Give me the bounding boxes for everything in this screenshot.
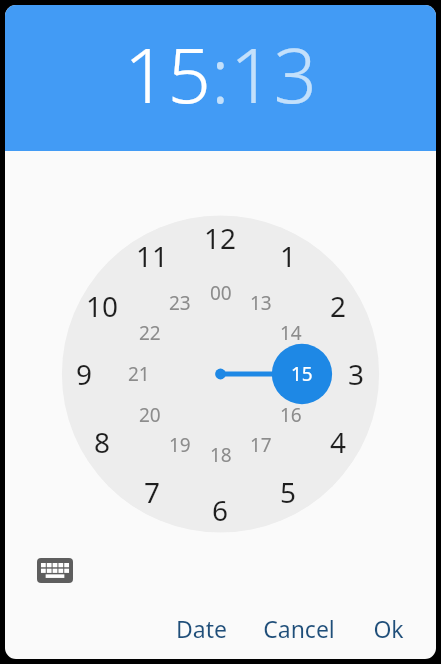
button[interactable]: Switch to keyboard input: [32, 553, 78, 587]
staticText: 14: [280, 320, 302, 346]
button[interactable]: Cancel: [253, 607, 345, 650]
button[interactable]: Ok: [363, 607, 414, 650]
staticText: 4: [330, 423, 347, 461]
staticText: 22: [139, 320, 161, 346]
staticText: 3: [348, 355, 365, 393]
staticText: 00: [210, 280, 232, 306]
staticText: :: [211, 22, 230, 126]
staticText: Ok: [373, 613, 404, 644]
staticText: 20: [139, 402, 161, 428]
staticText: 7: [144, 473, 161, 511]
staticText: Cancel: [263, 613, 335, 644]
staticText: 13: [230, 22, 317, 126]
staticText: 2: [330, 287, 347, 325]
staticText: 15: [124, 22, 211, 126]
staticText: 17: [250, 432, 272, 458]
staticText: 16: [280, 402, 302, 428]
staticText: 21: [128, 361, 150, 387]
staticText: 19: [169, 432, 191, 458]
button[interactable]: 13: [230, 22, 317, 126]
button[interactable]: 15: [124, 22, 211, 126]
staticText: 1: [280, 237, 297, 275]
staticText: 13: [250, 290, 272, 316]
staticText: 15: [291, 361, 313, 387]
staticText: 6: [212, 491, 229, 529]
staticText: 18: [210, 442, 232, 468]
staticText: 8: [94, 423, 111, 461]
staticText: 11: [136, 237, 169, 275]
staticText: 9: [76, 355, 93, 393]
staticText: 12: [204, 219, 237, 257]
staticText: 10: [86, 287, 119, 325]
button[interactable]: Date: [166, 607, 237, 650]
staticText: 5: [280, 473, 297, 511]
staticText: 23: [169, 290, 191, 316]
staticText: Date: [176, 613, 227, 644]
